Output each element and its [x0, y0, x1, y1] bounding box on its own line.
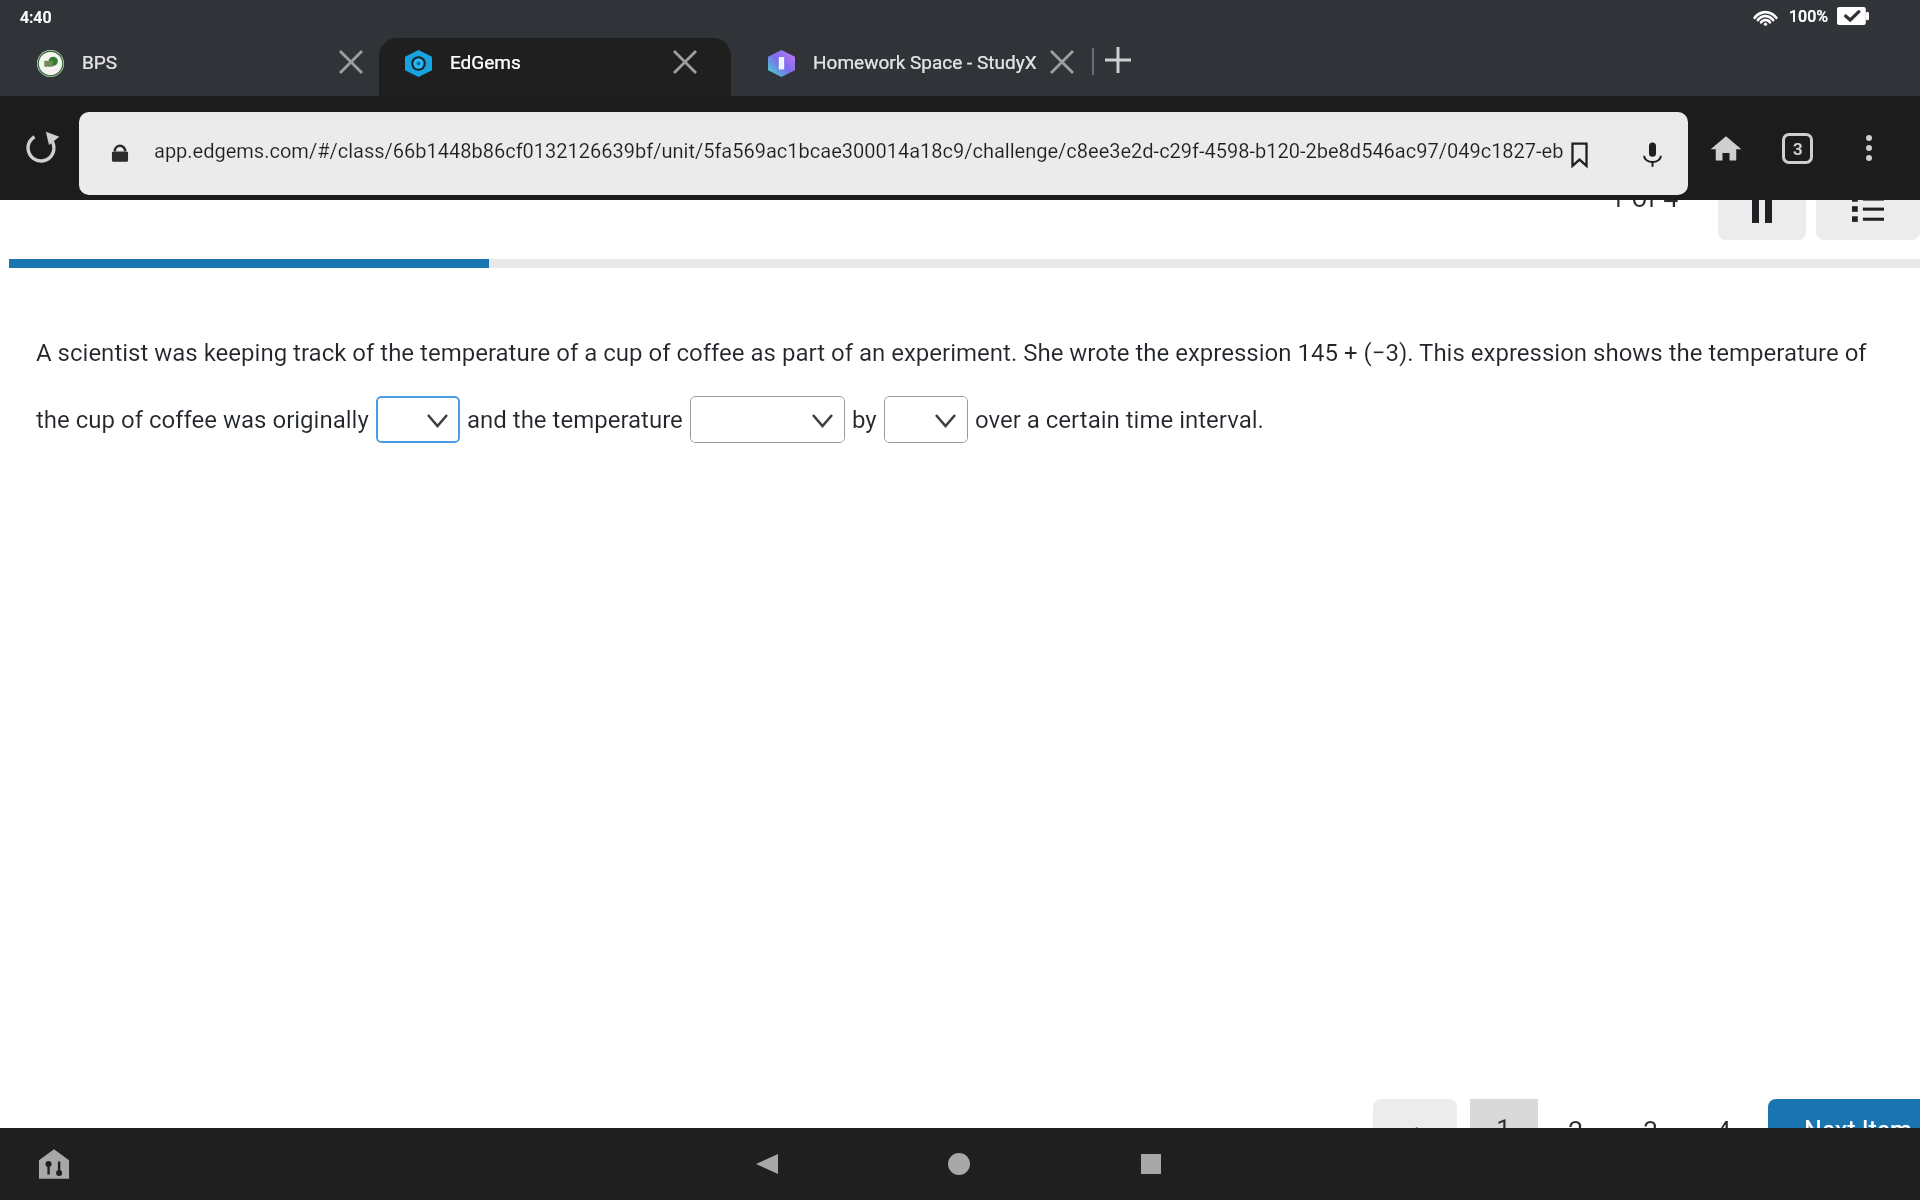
button[interactable]: Previous: [1373, 1099, 1457, 1161]
staticText: 2: [1568, 1116, 1584, 1148]
staticText: 3: [1793, 139, 1803, 159]
staticText: Homework Space - StudyX: [813, 51, 1040, 73]
staticText: and the temperature: [467, 406, 683, 434]
staticText: Next Item: [1804, 1116, 1913, 1145]
staticText: EdGems: [450, 51, 521, 73]
staticText: BPS: [82, 51, 330, 73]
button[interactable]: Select an option: [376, 396, 460, 443]
button[interactable]: Select an option: [884, 396, 968, 443]
staticText: the cup of coffee was originally: [36, 406, 369, 434]
button[interactable]: Back: [740, 1137, 794, 1191]
staticText: app.edgems.com/#/class/66b1448b86cf01321…: [154, 139, 1564, 162]
staticText: A scientist was keeping track of the tem…: [36, 339, 1867, 367]
staticText: over a certain time interval.: [975, 406, 1264, 434]
staticText: 1: [1496, 1114, 1512, 1146]
button[interactable]: 1: [1470, 1099, 1538, 1161]
button[interactable]: Pause timer: [1718, 178, 1806, 240]
button[interactable]: Close tab: [1040, 40, 1084, 84]
button[interactable]: Open tabs: [1773, 124, 1821, 172]
button[interactable]: New tab: [1096, 38, 1140, 82]
button[interactable]: Question list: [1816, 178, 1920, 240]
button[interactable]: Next Item: [1768, 1099, 1920, 1161]
staticText: 1 of 4: [1610, 182, 1679, 214]
button[interactable]: Select an option: [690, 396, 845, 443]
button[interactable]: Home: [1702, 124, 1750, 172]
staticText: 100%: [1789, 7, 1829, 26]
button[interactable]: Reload: [18, 125, 64, 171]
button[interactable]: BPS: [0, 30, 395, 96]
button[interactable]: EdGems: [379, 38, 731, 96]
button[interactable]: app.edgems.com/#/class/66b1448b86cf01321…: [79, 112, 1688, 195]
button[interactable]: More options: [1845, 124, 1893, 172]
button[interactable]: Close tab: [329, 40, 373, 84]
staticText: by: [852, 406, 877, 434]
button[interactable]: Homework Space - StudyX: [731, 30, 1106, 96]
staticText: ‹: [1410, 1113, 1420, 1148]
button[interactable]: Recent apps: [1124, 1137, 1178, 1191]
button[interactable]: Voice search: [1629, 131, 1675, 177]
staticText: 4: [1716, 1116, 1732, 1148]
button[interactable]: Close tab: [663, 40, 707, 84]
button[interactable]: Bookmark: [1556, 131, 1602, 177]
staticText: 3: [1643, 1116, 1659, 1148]
staticText: 4:40: [20, 8, 52, 27]
button[interactable]: Assistant panel: [32, 1142, 76, 1186]
button[interactable]: Home: [932, 1137, 986, 1191]
